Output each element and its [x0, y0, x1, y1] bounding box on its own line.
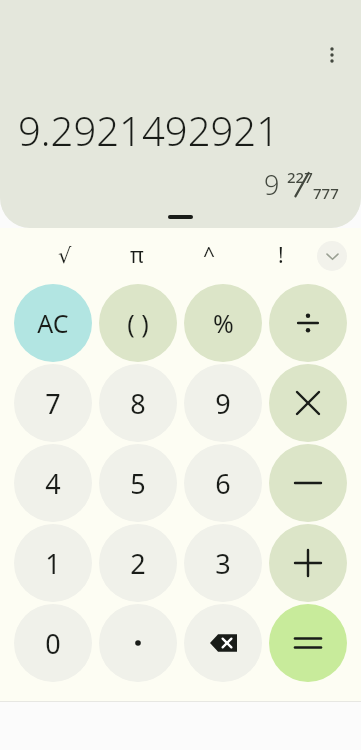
button[interactable]: AC [14, 284, 92, 362]
button[interactable]: 7 [14, 364, 92, 442]
button[interactable]: 2 [99, 524, 177, 602]
staticText: 1 [45, 545, 61, 582]
button[interactable]: Show more functions [317, 241, 347, 271]
button[interactable]: ( ) [99, 284, 177, 362]
staticText: 6 [215, 465, 231, 502]
button[interactable]: Decimal point [99, 604, 177, 682]
button[interactable]: 9 [184, 364, 262, 442]
button[interactable]: 5 [99, 444, 177, 522]
staticText: ( ) [127, 306, 149, 340]
button[interactable]: 0 [14, 604, 92, 682]
button[interactable]: Plus [269, 524, 347, 602]
staticText: 0 [45, 625, 61, 662]
button[interactable]: √ [28, 228, 101, 283]
staticText: 3 [215, 545, 231, 582]
button[interactable]: 8 [99, 364, 177, 442]
staticText: 9.2921492921 [18, 103, 279, 157]
staticText: ^ [203, 241, 216, 270]
staticText: 227 [287, 167, 313, 187]
button[interactable]: 1 [14, 524, 92, 602]
staticText: 9 [264, 166, 280, 203]
button[interactable]: Multiply [269, 364, 347, 442]
staticText: AC [37, 306, 69, 340]
button[interactable]: 6 [184, 444, 262, 522]
staticText: 8 [130, 385, 146, 422]
staticText: 4 [45, 465, 61, 502]
staticText: 9 [215, 385, 231, 422]
staticText: π [130, 241, 144, 270]
staticText: 7 [45, 385, 61, 422]
button[interactable]: Backspace [184, 604, 262, 682]
button[interactable]: π [101, 228, 173, 283]
button[interactable]: 3 [184, 524, 262, 602]
button[interactable]: % [184, 284, 262, 362]
button[interactable]: More options [311, 34, 353, 76]
button[interactable]: ^ [173, 228, 245, 283]
staticText: √ [58, 244, 72, 268]
staticText: ! [278, 241, 284, 270]
staticText: 777 [313, 183, 339, 203]
staticText: 5 [130, 465, 146, 502]
staticText: % [213, 306, 234, 340]
staticText: 2 [130, 545, 146, 582]
button[interactable]: Divide [269, 284, 347, 362]
button[interactable]: 4 [14, 444, 92, 522]
button[interactable]: Minus [269, 444, 347, 522]
button[interactable]: ! [245, 228, 317, 283]
button[interactable]: Expand display [168, 215, 193, 219]
button[interactable]: Equals [269, 604, 347, 682]
